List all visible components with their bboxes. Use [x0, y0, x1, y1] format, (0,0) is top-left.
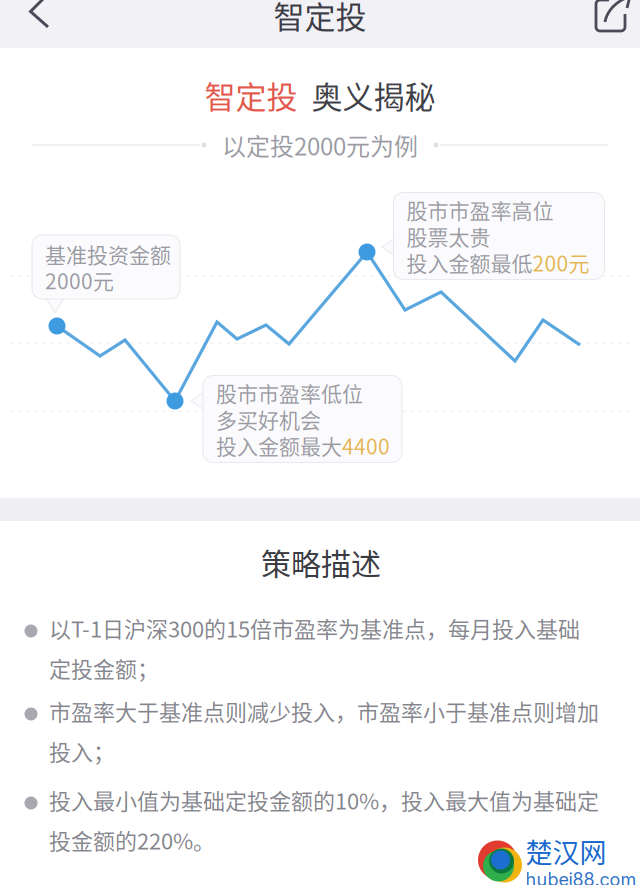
staticText: hubei88.com [525, 869, 636, 885]
staticText: 多买好机会 [216, 404, 321, 434]
staticText: 策略描述 [261, 540, 381, 584]
staticText: 股票太贵 [406, 221, 490, 251]
staticText: 4400 [342, 430, 390, 461]
staticText: 定投金额； [49, 652, 159, 684]
staticText: 智定投 [204, 73, 297, 117]
staticText: 以定投2000元为例 [222, 128, 418, 162]
staticText: 基准投资金额 [45, 239, 171, 269]
staticText: 投入； [49, 735, 115, 767]
staticText: 以T-1日沪深300的15倍市盈率为基准点，每月投入基础 [49, 612, 580, 644]
staticText: 投入最小值为基础定投金额的10%，投入最大值为基础定 [49, 784, 599, 816]
staticText: 楚汉网 [525, 832, 606, 871]
staticText: 奥义揭秘 [311, 73, 435, 117]
staticText: 股市市盈率高位 [406, 194, 553, 225]
staticText: 股市市盈率低位 [216, 377, 363, 408]
staticText: 智定投 [273, 0, 366, 37]
button[interactable]: Back [0, 0, 78, 39]
staticText: 投入金额最低 [406, 247, 532, 278]
staticText: 投入金额最大 [216, 430, 342, 461]
button[interactable]: Share [578, 0, 640, 44]
staticText: 市盈率大于基准点则减少投入，市盈率小于基准点则增加 [49, 695, 599, 727]
staticText: 2000元 [45, 265, 114, 295]
staticText: 200元 [532, 247, 589, 278]
staticText: 投金额的220%。 [49, 824, 215, 856]
